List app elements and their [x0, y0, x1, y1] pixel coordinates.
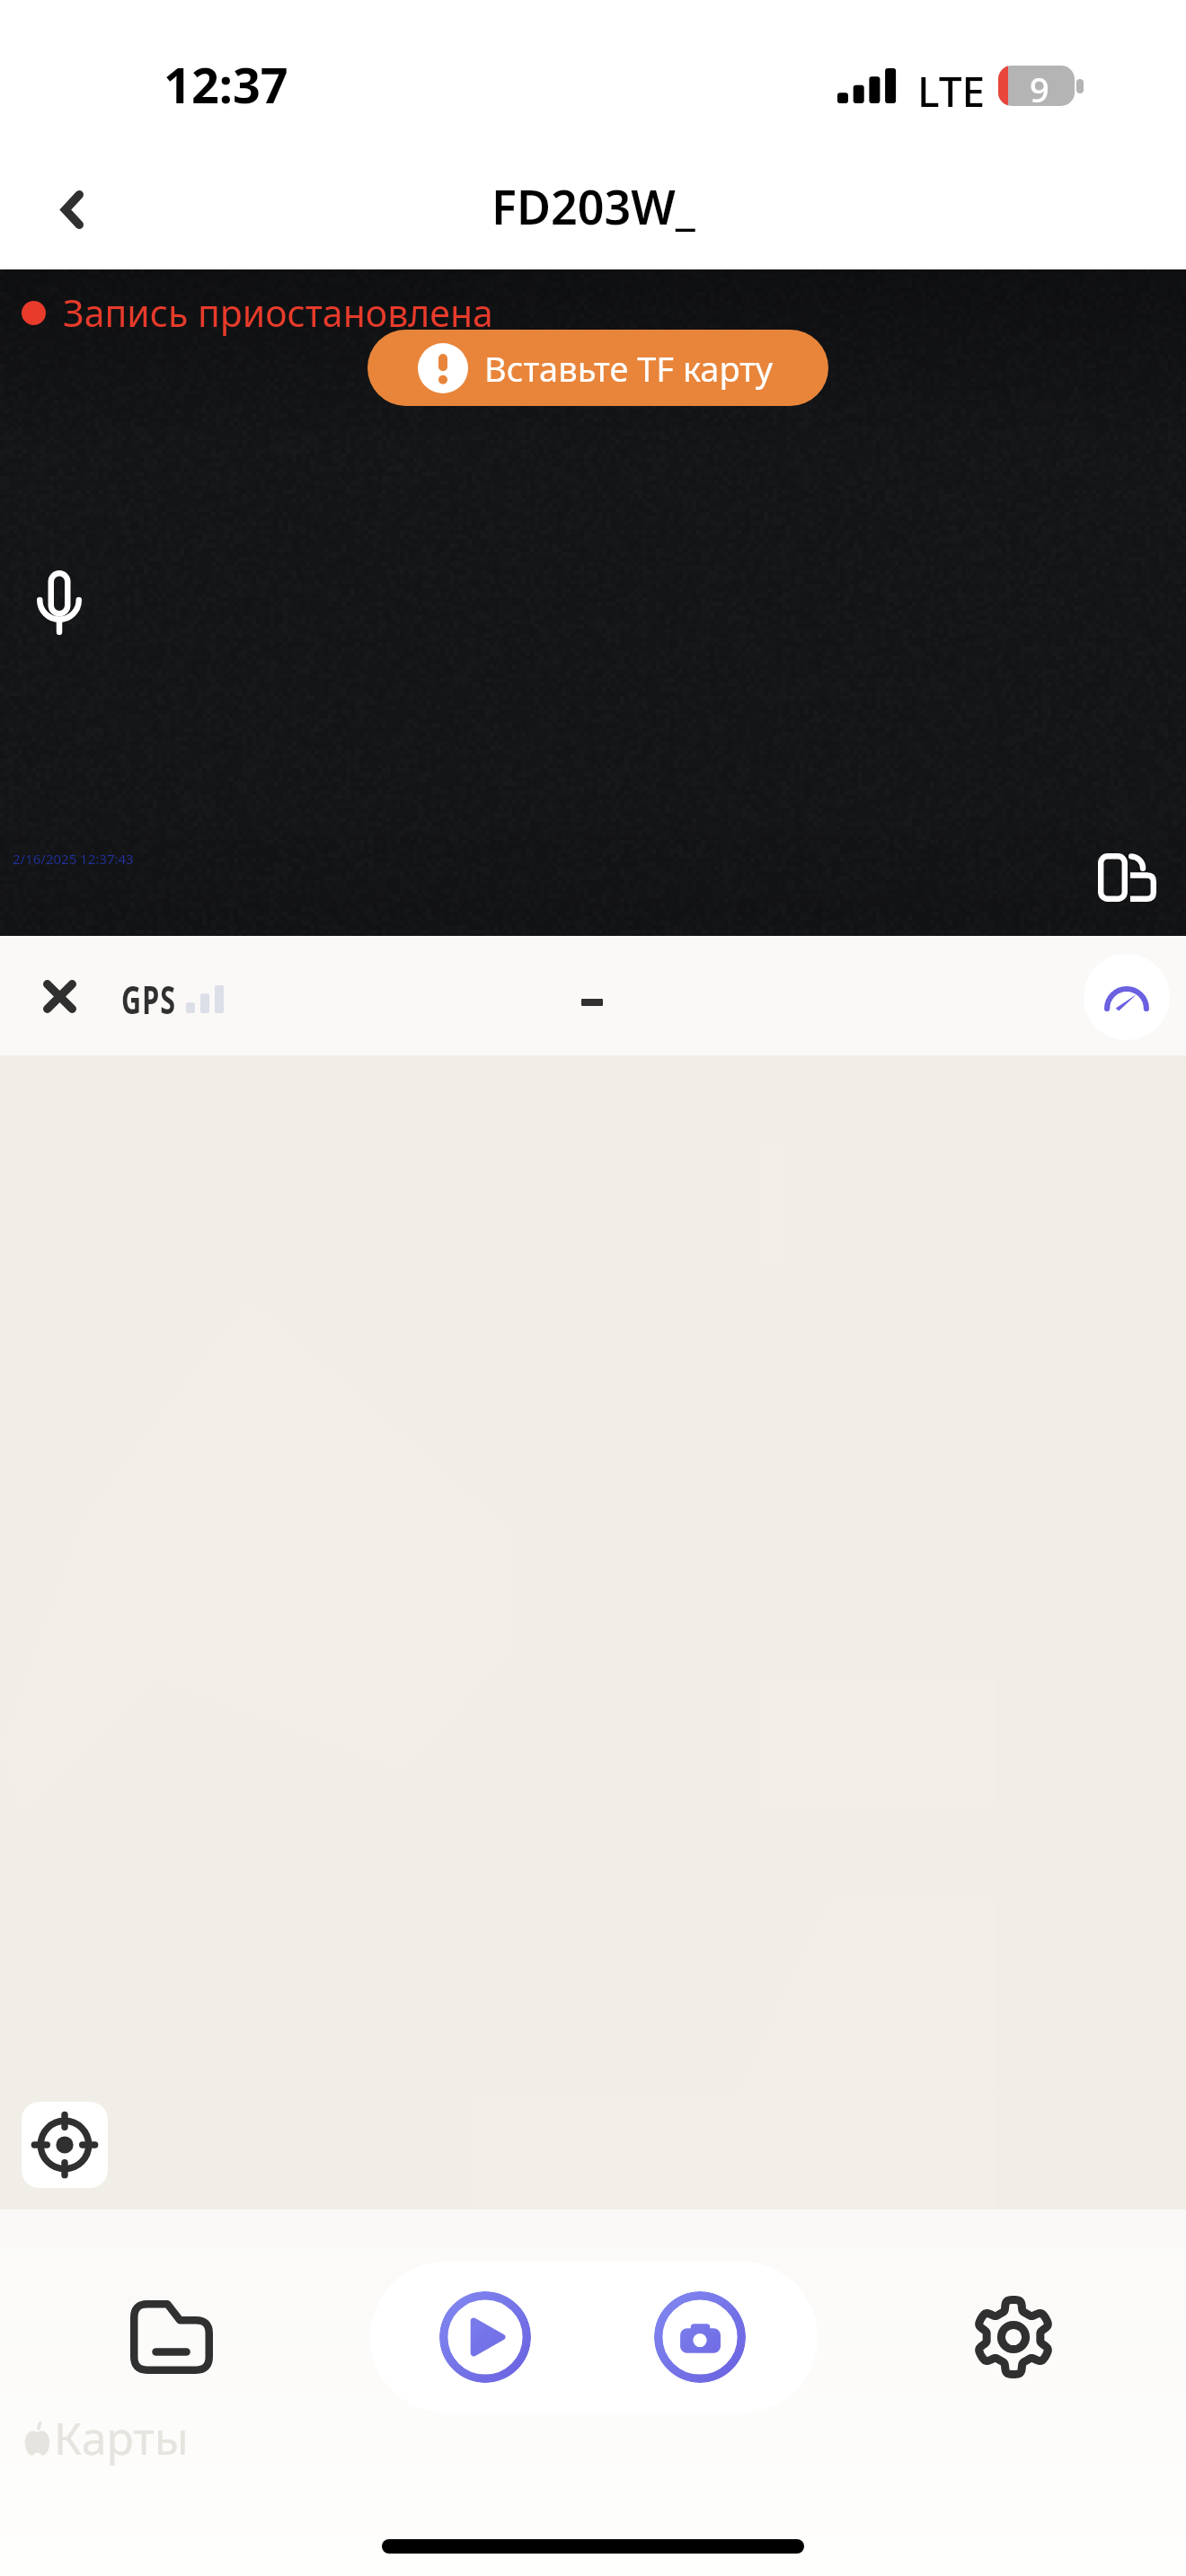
staticText: 9	[1030, 66, 1049, 106]
staticText: Вставьте TF карту	[484, 345, 774, 392]
button[interactable]: Settings	[960, 2283, 1067, 2391]
button[interactable]: Cast screen	[1091, 842, 1163, 913]
button[interactable]: Play live view	[439, 2291, 531, 2383]
staticText: 2/16/2025 12:37:43	[13, 850, 134, 868]
button[interactable]: Take photo	[654, 2291, 746, 2383]
button[interactable]: Speedometer	[1084, 954, 1170, 1040]
button[interactable]: Close	[24, 961, 94, 1031]
button[interactable]: Back	[25, 163, 119, 256]
staticText: LTE	[917, 63, 986, 119]
staticText: Карты	[54, 2407, 189, 2468]
staticText: Запись приостановлена	[63, 287, 493, 338]
button[interactable]: Вставьте TF карту	[367, 330, 828, 406]
staticText: 12:37	[164, 51, 288, 118]
staticText: GPS	[121, 973, 177, 1026]
staticText: FD203W_	[491, 174, 695, 238]
button[interactable]: Files	[118, 2283, 226, 2391]
button[interactable]: My location	[22, 2102, 108, 2188]
button[interactable]: Microphone	[23, 567, 95, 639]
